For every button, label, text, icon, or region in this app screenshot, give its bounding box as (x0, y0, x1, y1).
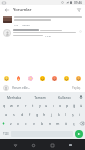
staticText: z (10, 121, 12, 126)
staticText: v (33, 121, 35, 126)
staticText: e (17, 103, 20, 108)
button[interactable]: u (43, 101, 50, 110)
button[interactable]: l (62, 110, 69, 119)
staticText: ?123 (3, 132, 9, 136)
staticText: Yorum ekle… (12, 86, 31, 90)
staticText: Kullanıcı (58, 95, 71, 99)
button[interactable]: Emoji reaction (15, 75, 22, 82)
staticText: 09:46 (74, 1, 83, 5)
staticText: k (58, 112, 60, 117)
staticText: g (36, 112, 39, 117)
button[interactable]: Emoji reaction (3, 75, 10, 82)
button[interactable]: t (29, 101, 36, 110)
button[interactable]: Voice input (77, 92, 84, 101)
staticText: u (45, 103, 48, 108)
button[interactable]: v (30, 119, 38, 128)
button[interactable]: y (36, 101, 43, 110)
staticText: p (66, 103, 69, 108)
button[interactable]: Back (3, 6, 10, 13)
button[interactable]: p (64, 101, 71, 110)
button[interactable]: Emoji reaction (63, 75, 70, 82)
button[interactable]: Tamam (27, 92, 52, 101)
staticText: 174 (14, 23, 19, 26)
button[interactable]: Recent apps (48, 141, 56, 149)
staticText: o (59, 103, 62, 108)
button[interactable]: Send (75, 130, 83, 138)
button[interactable]: ?123 (2, 129, 10, 138)
button[interactable]: n (46, 119, 54, 128)
staticText: f (29, 112, 31, 117)
staticText: Tamam (34, 95, 46, 99)
button[interactable]: Emoji reaction (27, 75, 34, 82)
button[interactable]: g (34, 110, 41, 119)
staticText: c (25, 121, 27, 126)
staticText: Yorumlar (13, 7, 32, 13)
button[interactable]: z (7, 119, 14, 128)
staticText: ö (65, 121, 68, 126)
button[interactable]: ö (62, 119, 70, 128)
button[interactable]: Back (11, 141, 19, 149)
button[interactable]: s (10, 110, 18, 119)
staticText: Yanıtla (22, 23, 30, 26)
staticText: a (5, 112, 8, 117)
button[interactable]: Paylaş (71, 85, 82, 91)
button[interactable]: q (0, 101, 8, 110)
button[interactable]: ç (70, 119, 78, 128)
button[interactable]: Kullanıcı (52, 92, 77, 101)
staticText: i (79, 112, 80, 117)
staticText: j (51, 112, 52, 117)
button[interactable]: Sort comments (75, 6, 82, 13)
button[interactable]: Shift (0, 119, 7, 128)
button[interactable]: x (14, 119, 22, 128)
button[interactable]: Home (29, 141, 37, 149)
button[interactable]: a (2, 110, 10, 119)
button[interactable]: ş (69, 110, 76, 119)
button[interactable]: b (38, 119, 46, 128)
button[interactable]: Merhaba (1, 92, 27, 101)
staticText: q (3, 103, 6, 108)
button[interactable]: 1.2 B (0, 27, 85, 37)
button[interactable]: Emoji reaction (39, 75, 46, 82)
staticText: ı (53, 103, 54, 108)
button[interactable]: Emoji reaction (51, 75, 58, 82)
button[interactable]: ı (50, 101, 57, 110)
button[interactable]: w (8, 101, 15, 110)
button[interactable]: h (41, 110, 48, 119)
button[interactable]: o (57, 101, 64, 110)
button[interactable]: Yorum ekle… (11, 85, 69, 91)
button[interactable]: j (48, 110, 55, 119)
button[interactable]: ğ (71, 101, 78, 110)
staticText: h (43, 112, 46, 117)
staticText: x (17, 121, 19, 126)
staticText: Paylaş (72, 86, 81, 90)
staticText: r (25, 103, 27, 108)
button[interactable]: ü (78, 101, 85, 110)
staticText: ü (80, 103, 83, 108)
button[interactable]: i (76, 110, 83, 119)
button[interactable]: More options (78, 29, 82, 33)
button[interactable]: k (55, 110, 62, 119)
staticText: d (21, 112, 24, 117)
staticText: y (39, 103, 41, 108)
button[interactable]: f (26, 110, 34, 119)
staticText: 1.2 B (45, 34, 51, 37)
button[interactable]: 174 (0, 14, 85, 27)
staticText: w (10, 103, 13, 108)
button[interactable]: Keyboard (66, 141, 74, 149)
staticText: l (65, 112, 66, 117)
staticText: Merhaba (7, 95, 21, 99)
staticText: t (32, 103, 34, 108)
staticText: s (13, 112, 15, 117)
button[interactable]: Emoji reaction (75, 75, 82, 82)
staticText: ç (73, 121, 75, 126)
button[interactable]: e (15, 101, 22, 110)
staticText: m (56, 121, 60, 126)
staticText: b (41, 121, 44, 126)
staticText: ş (72, 112, 74, 117)
button[interactable]: c (22, 119, 30, 128)
button[interactable]: r (22, 101, 29, 110)
button[interactable]: d (18, 110, 26, 119)
button[interactable]: m (54, 119, 62, 128)
button[interactable]: Backspace (78, 119, 85, 128)
